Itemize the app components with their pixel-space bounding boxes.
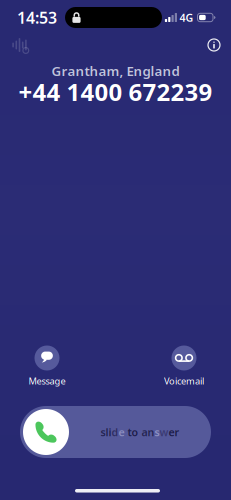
staticText (124, 425, 127, 439)
staticText: w (159, 425, 168, 439)
button[interactable]: sli (20, 406, 211, 458)
button[interactable]: Voicemail (146, 344, 222, 388)
staticText: er (168, 425, 179, 439)
staticText: 14:53 (17, 7, 57, 28)
staticText: e (118, 425, 124, 439)
staticText: sli (100, 425, 111, 439)
staticText: Message (28, 375, 65, 387)
staticText: +44 1400 672239 (18, 76, 212, 108)
staticText: 4G (179, 10, 193, 25)
staticText: Voicemail (164, 375, 204, 387)
button[interactable]: Call info (207, 38, 221, 52)
button[interactable]: Message (9, 344, 85, 388)
staticText: Grantham, England (51, 62, 179, 80)
staticText: to (127, 425, 138, 439)
staticText: d (111, 425, 118, 439)
staticText: an (138, 425, 154, 439)
staticText: s (154, 425, 159, 439)
